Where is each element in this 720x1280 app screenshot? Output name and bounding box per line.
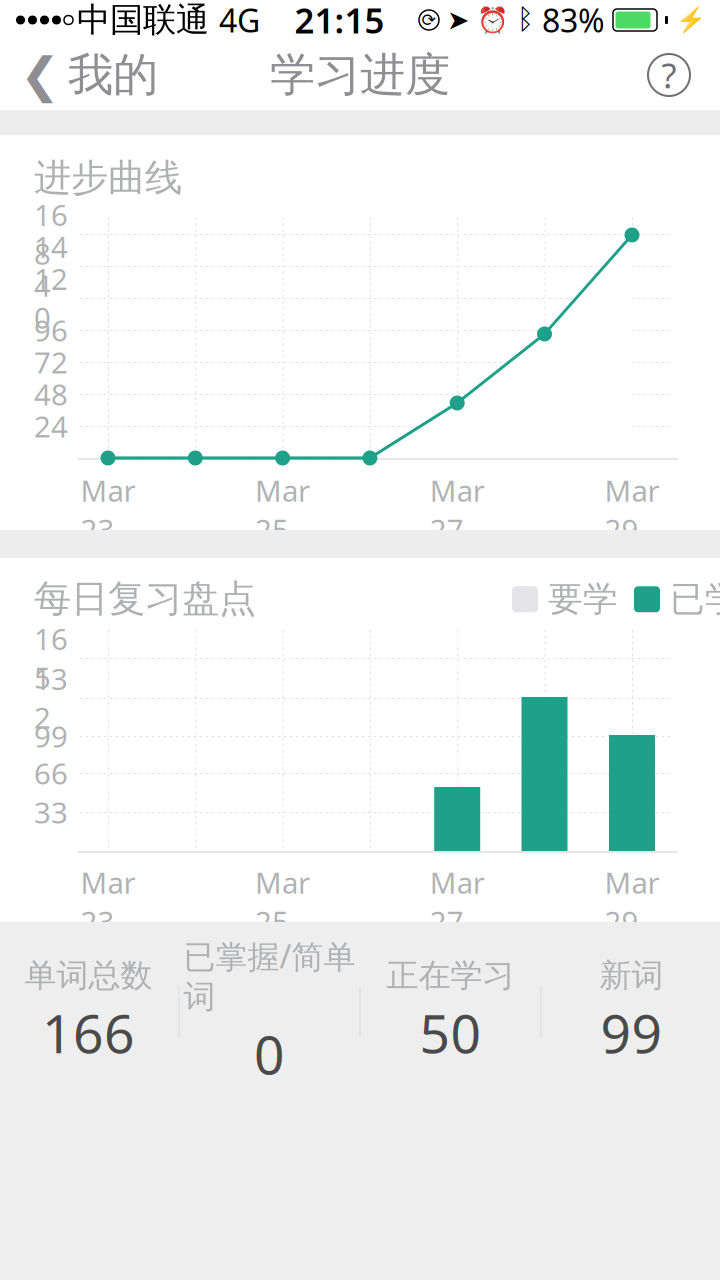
staticText: 144 (34, 227, 68, 305)
staticText: 48 (34, 374, 68, 413)
staticText: 学习进度 (270, 47, 450, 103)
staticText: Mar 29 (604, 863, 659, 941)
staticText: 83% (542, 0, 605, 41)
staticText: 进步曲线 (34, 155, 182, 201)
staticText: 要学 (548, 578, 618, 621)
staticText: 50 (419, 997, 481, 1068)
staticText: Mar 23 (80, 863, 135, 941)
staticText: 99 (34, 716, 68, 755)
staticText: 165 (34, 619, 68, 697)
staticText: 每日复习盘点 (34, 576, 256, 622)
staticText: 166 (42, 997, 135, 1068)
staticText: ᛒ (517, 6, 534, 34)
staticText: Mar 29 (604, 471, 659, 549)
staticText: Mar 25 (255, 863, 310, 941)
staticText: 168 (34, 195, 68, 273)
staticText: 单词总数 (24, 956, 152, 995)
button[interactable]: Help (648, 54, 720, 96)
staticText: 33 (34, 792, 68, 831)
button[interactable]: 已掌握/简单词 (179, 935, 359, 1089)
staticText: Mar 25 (255, 471, 310, 549)
staticText: ⏰ (477, 5, 509, 34)
staticText: 24 (34, 406, 68, 445)
staticText: ❮ (20, 48, 60, 102)
staticText: 4G (219, 0, 260, 41)
staticText: 正在学习 (386, 956, 514, 995)
staticText: 96 (34, 310, 68, 349)
staticText: Mar 27 (430, 471, 485, 549)
button[interactable]: ❮ (0, 39, 158, 111)
button[interactable]: 正在学习 (360, 956, 540, 1068)
staticText: 新词 (599, 956, 663, 995)
staticText: 已学 (670, 578, 720, 621)
staticText: Mar 23 (80, 471, 135, 549)
staticText: 我的 (68, 47, 158, 103)
staticText: 66 (34, 753, 68, 792)
staticText: ➤ (447, 5, 469, 35)
staticText: 72 (34, 342, 68, 381)
staticText: 0 (254, 1018, 285, 1089)
staticText: 99 (600, 997, 662, 1068)
staticText: 已掌握/简单词 (183, 935, 355, 1016)
staticText: Mar 27 (430, 863, 485, 941)
staticText: 中国联通 (77, 0, 209, 40)
staticText: ⚡ (676, 6, 706, 34)
staticText: 21:15 (294, 0, 384, 43)
staticText: 132 (34, 659, 68, 737)
staticText: ⟳ (421, 10, 436, 30)
staticText: 120 (34, 259, 68, 337)
button[interactable]: 单词总数 (0, 956, 178, 1068)
button[interactable]: 新词 (541, 956, 720, 1068)
staticText: ? (661, 52, 676, 98)
